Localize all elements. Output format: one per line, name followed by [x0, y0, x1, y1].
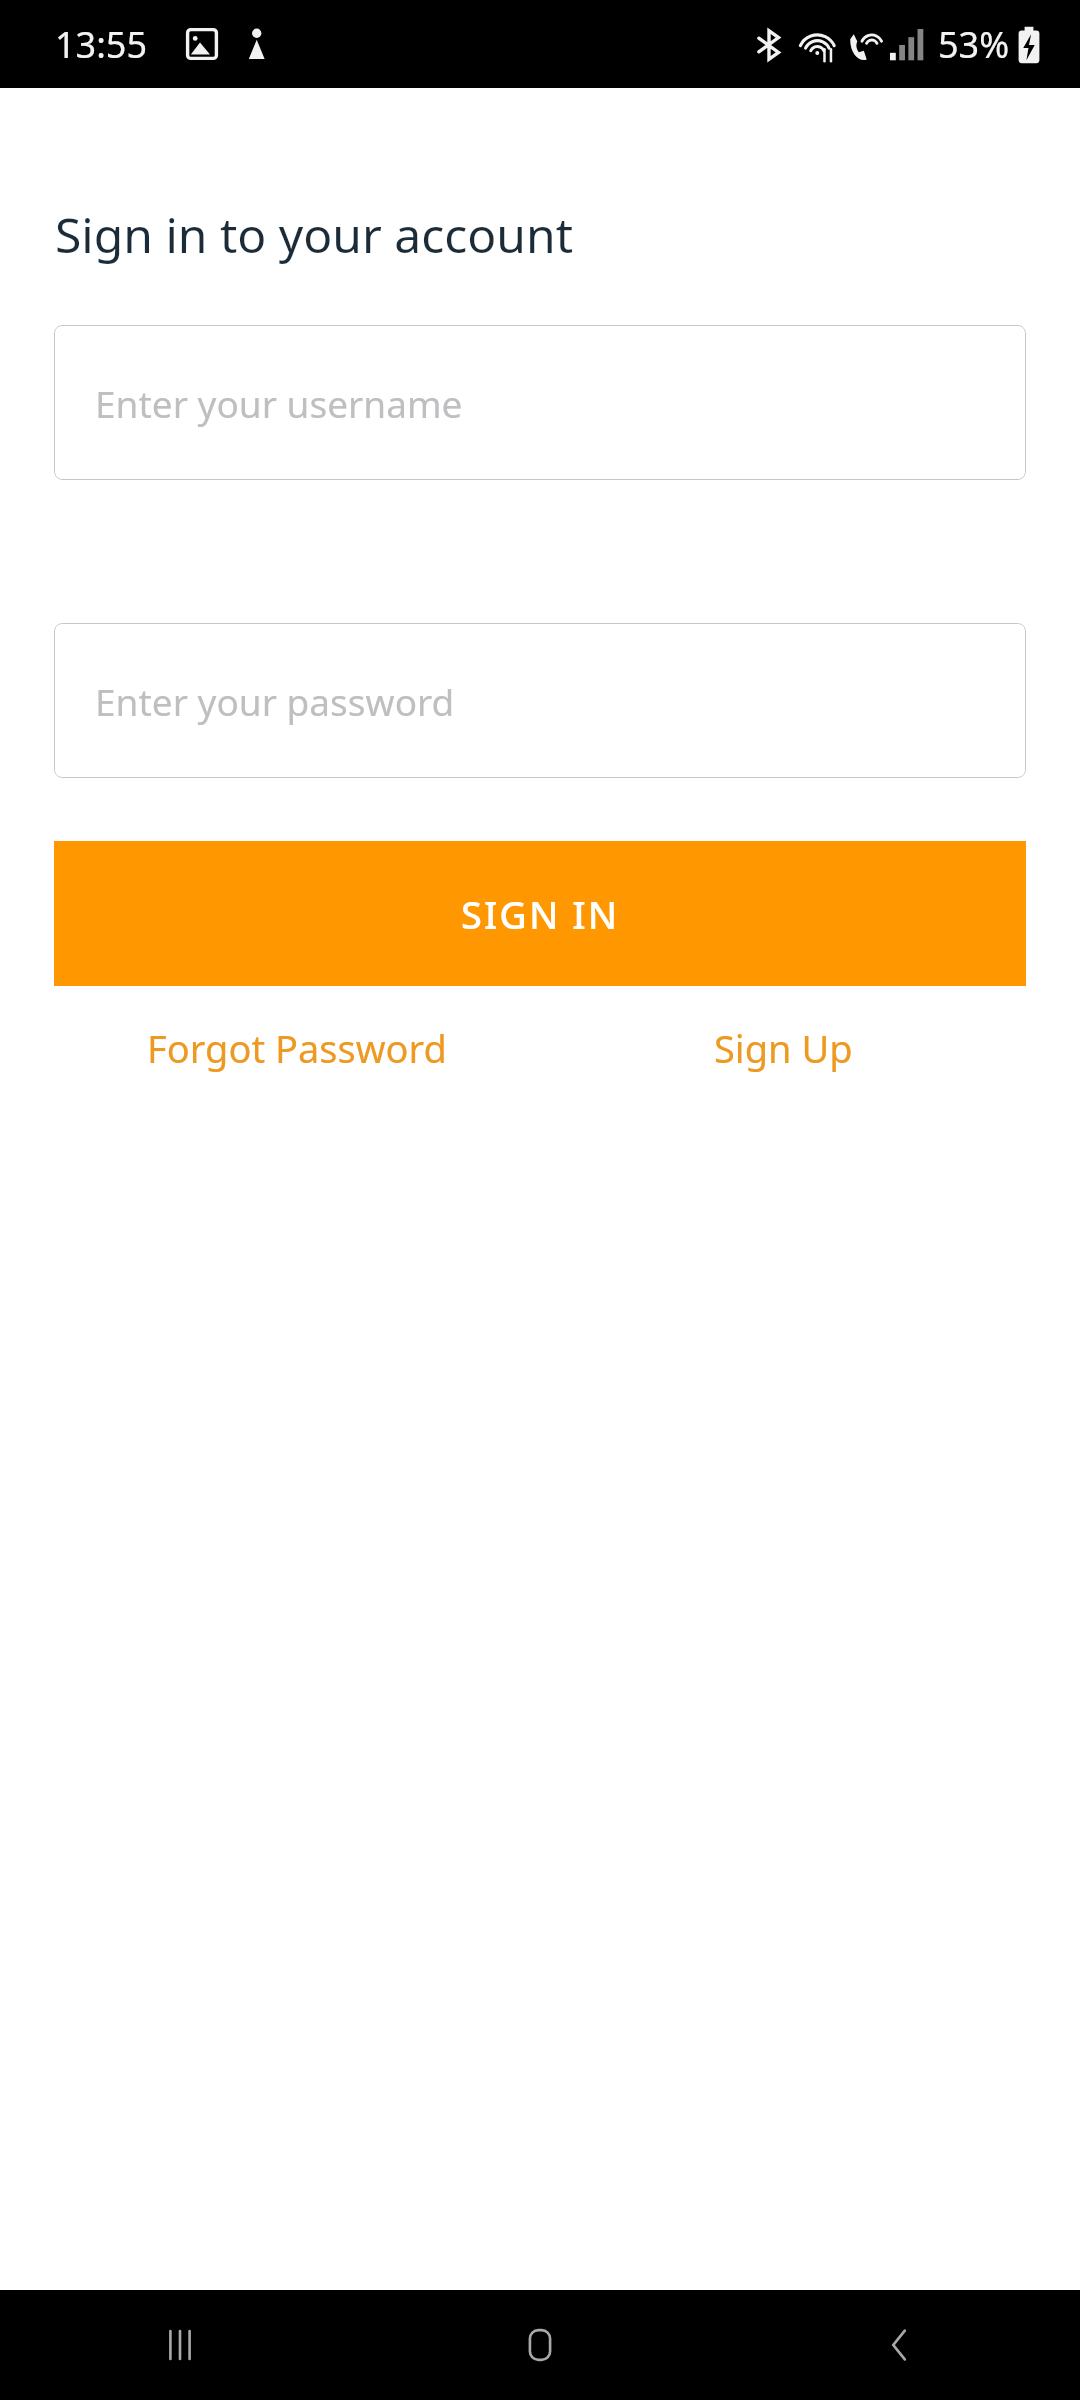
button[interactable]: Enter your username	[54, 325, 1026, 480]
staticText: 13:55	[55, 20, 148, 69]
button[interactable]: Recent apps	[0, 2290, 360, 2400]
staticText: Enter your username	[95, 378, 463, 428]
button[interactable]: Back	[720, 2290, 1080, 2400]
button[interactable]: Sign Up	[540, 1022, 1026, 1074]
button[interactable]: Forgot Password	[54, 1022, 540, 1074]
staticText: Sign Up	[714, 1022, 853, 1074]
staticText: Forgot Password	[147, 1022, 447, 1074]
button[interactable]: SIGN IN	[54, 841, 1026, 986]
staticText: Enter your password	[95, 676, 455, 726]
button[interactable]: Enter your password	[54, 623, 1026, 778]
button[interactable]: Home	[360, 2290, 720, 2400]
staticText: 53%	[938, 20, 1010, 69]
staticText: SIGN IN	[461, 888, 620, 940]
staticText: Sign in to your account	[55, 202, 573, 267]
